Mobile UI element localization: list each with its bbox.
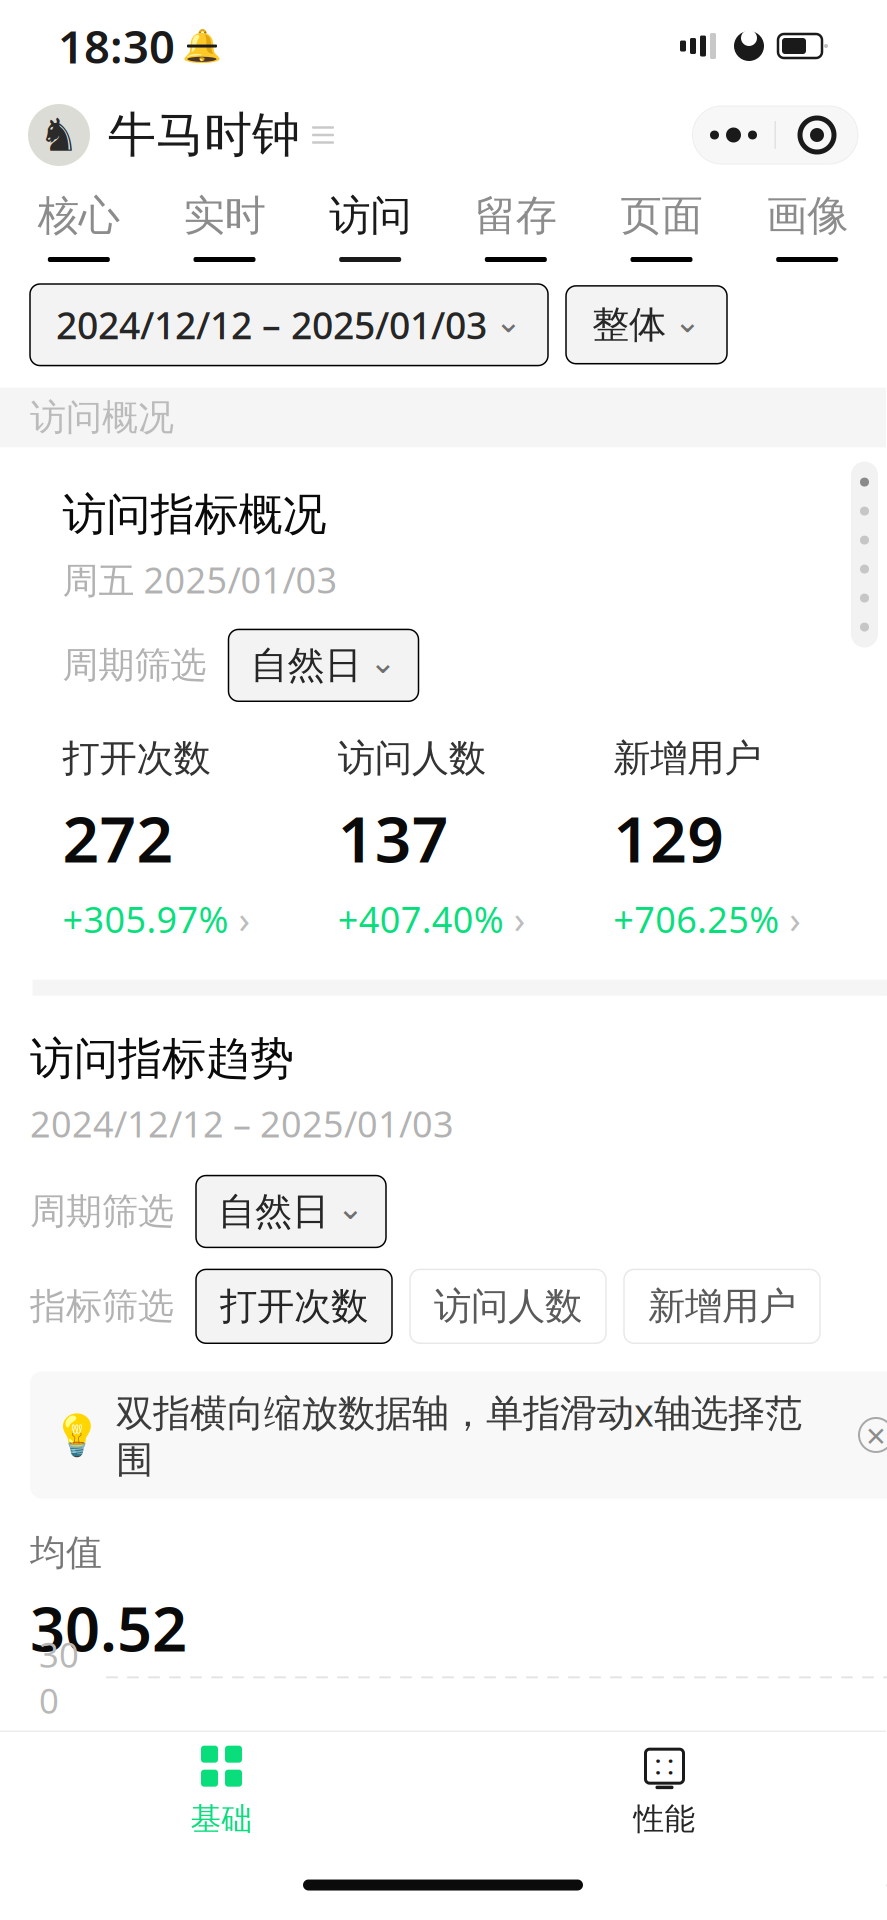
button[interactable]: 打开次数 — [196, 1269, 392, 1343]
button[interactable]: 自然日 — [228, 629, 418, 701]
staticText: ⌄ — [369, 644, 396, 680]
staticText: 打开次数 — [62, 735, 210, 781]
staticText: 18:30 — [58, 16, 175, 76]
staticText: 留存 — [475, 190, 557, 241]
staticText: › — [238, 894, 250, 944]
staticText: 访问人数 — [434, 1283, 582, 1329]
staticText: › — [514, 894, 526, 944]
staticText: 💡 — [52, 1412, 102, 1458]
button[interactable]: 核心 — [6, 178, 152, 272]
staticText: 129 — [613, 795, 724, 880]
staticText: 访问 — [329, 190, 411, 241]
button[interactable]: 访问人数 — [338, 735, 613, 944]
staticText: ⌄ — [337, 1190, 364, 1226]
staticText: 均值 — [30, 1531, 102, 1575]
staticText: ⌄ — [495, 303, 522, 339]
staticText: ⸬ — [655, 1752, 674, 1780]
button[interactable]: 关闭提示 — [853, 1412, 887, 1458]
staticText: 打开次数 — [220, 1283, 368, 1329]
staticText: +305.97% — [62, 895, 228, 943]
button[interactable]: 实时 — [152, 178, 297, 272]
staticText: 2024/12/12 – 2025/01/03 — [56, 300, 487, 350]
staticText: 137 — [338, 795, 449, 880]
button[interactable]: 留存 — [443, 178, 589, 272]
staticText: ⌄ — [674, 303, 701, 339]
staticText: 访问人数 — [338, 735, 486, 781]
staticText: 访问概况 — [30, 395, 174, 440]
staticText: 新增用户 — [613, 735, 761, 781]
staticText: 自然日 — [218, 1189, 329, 1234]
button[interactable]: 访问 — [297, 178, 443, 272]
staticText: ♞ — [38, 109, 79, 161]
staticText: 画像 — [766, 190, 848, 241]
staticText: › — [789, 894, 801, 944]
button[interactable]: 画像 — [734, 178, 880, 272]
staticText: 周五 2025/01/03 — [62, 556, 337, 603]
button[interactable]: 打开次数 — [62, 735, 338, 944]
staticText: 272 — [62, 795, 173, 880]
button[interactable]: 关闭 — [776, 106, 858, 164]
staticText: 30.52 — [30, 1587, 187, 1668]
staticText: 2024/12/12 – 2025/01/03 — [30, 1100, 454, 1147]
staticText: 基础 — [190, 1800, 252, 1838]
button[interactable]: 页面 — [589, 178, 734, 272]
staticText: 页面 — [620, 190, 702, 241]
staticText: 实时 — [183, 190, 265, 241]
button[interactable]: 自然日 — [196, 1176, 386, 1247]
button[interactable]: ⸬ — [443, 1732, 886, 1850]
staticText: 周期筛选 — [62, 643, 206, 687]
staticText: 自然日 — [250, 642, 361, 688]
button[interactable]: 新增用户 — [624, 1269, 820, 1343]
button[interactable]: 访问人数 — [410, 1269, 606, 1343]
staticText: 核心 — [38, 190, 120, 241]
button[interactable]: 更多 — [692, 106, 774, 164]
staticText: +407.40% — [338, 895, 504, 943]
button[interactable]: 基础 — [0, 1732, 443, 1850]
staticText: 新增用户 — [648, 1283, 796, 1329]
staticText: 🔔 — [182, 28, 222, 64]
staticText: 整体 — [592, 302, 666, 348]
button[interactable]: 新增用户 — [613, 735, 887, 944]
staticText: 访问指标趋势 — [30, 1032, 294, 1086]
staticText: 访问指标概况 — [62, 488, 326, 542]
staticText: 指标筛选 — [30, 1284, 174, 1328]
staticText: +706.25% — [613, 895, 779, 943]
staticText: 牛马时钟 — [108, 105, 300, 164]
button[interactable]: 整体 — [566, 286, 727, 364]
staticText: 性能 — [633, 1800, 695, 1838]
staticText: 300 — [39, 1631, 79, 1723]
staticText: 周期筛选 — [30, 1189, 174, 1234]
staticText: 双指横向缩放数据轴，单指滑动x轴选择范围 — [116, 1387, 802, 1483]
button[interactable]: 2024/12/12 – 2025/01/03 — [30, 284, 548, 366]
staticText: × — [866, 1412, 886, 1458]
